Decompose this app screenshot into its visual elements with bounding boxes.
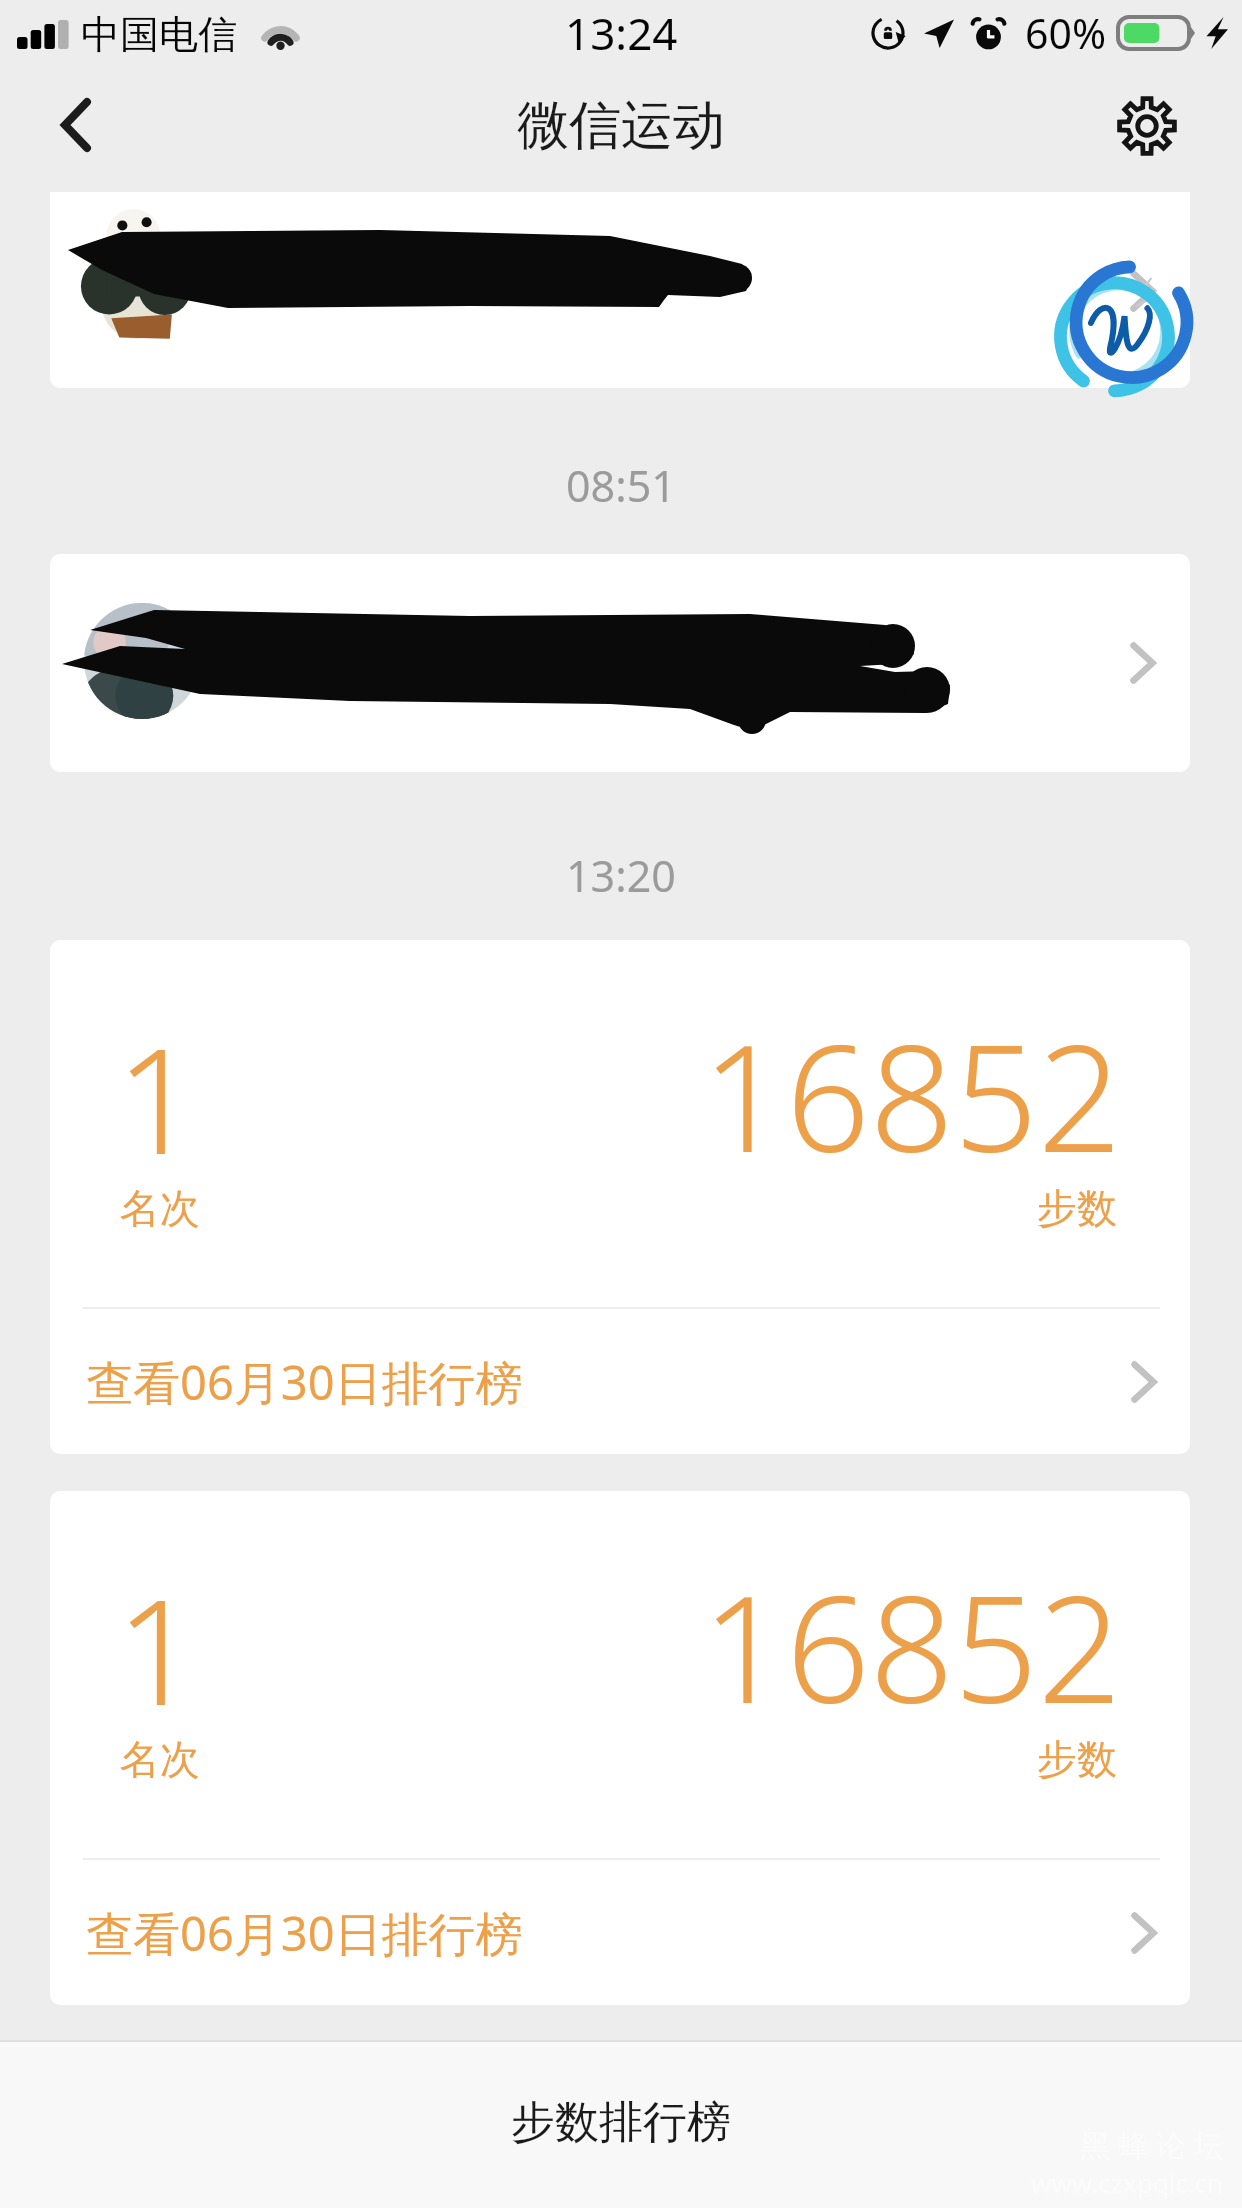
- staticText: 16852: [702, 995, 1122, 1195]
- button[interactable]: 查看06月30日排行榜: [50, 1860, 1190, 2005]
- other: Open: [1130, 642, 1156, 684]
- staticText: 步数: [1037, 1183, 1117, 1233]
- staticText: 查看06月30日排行榜: [86, 1350, 523, 1414]
- staticText: 步数排行榜: [511, 2095, 731, 2150]
- staticText: 13:20: [566, 846, 676, 905]
- button[interactable]: [50, 940, 1190, 1307]
- button[interactable]: [50, 1491, 1190, 1858]
- staticText: 13:24: [565, 3, 678, 63]
- staticText: 步数: [1037, 1734, 1117, 1784]
- staticText: 1: [116, 1550, 199, 1747]
- button[interactable]: Settings: [1092, 71, 1202, 181]
- staticText: 名次: [120, 1183, 200, 1233]
- other: Open: [1130, 270, 1156, 312]
- button[interactable]: Open: [50, 150, 1190, 388]
- staticText: 16852: [702, 1546, 1122, 1746]
- button[interactable]: 步数排行榜: [0, 2040, 1242, 2208]
- staticText: 1: [116, 999, 199, 1196]
- button[interactable]: 查看06月30日排行榜: [50, 1309, 1190, 1454]
- staticText: 名次: [120, 1734, 200, 1784]
- other: Open: [1131, 1912, 1157, 1954]
- staticText: 微信运动: [517, 93, 725, 159]
- staticText: 查看06月30日排行榜: [86, 1901, 523, 1965]
- button[interactable]: Open: [50, 554, 1190, 772]
- staticText: 60%: [1025, 5, 1106, 61]
- button[interactable]: Back: [21, 70, 131, 180]
- staticText: 中国电信: [81, 10, 237, 59]
- other: Open: [1131, 1361, 1157, 1403]
- staticText: 08:51: [566, 456, 676, 515]
